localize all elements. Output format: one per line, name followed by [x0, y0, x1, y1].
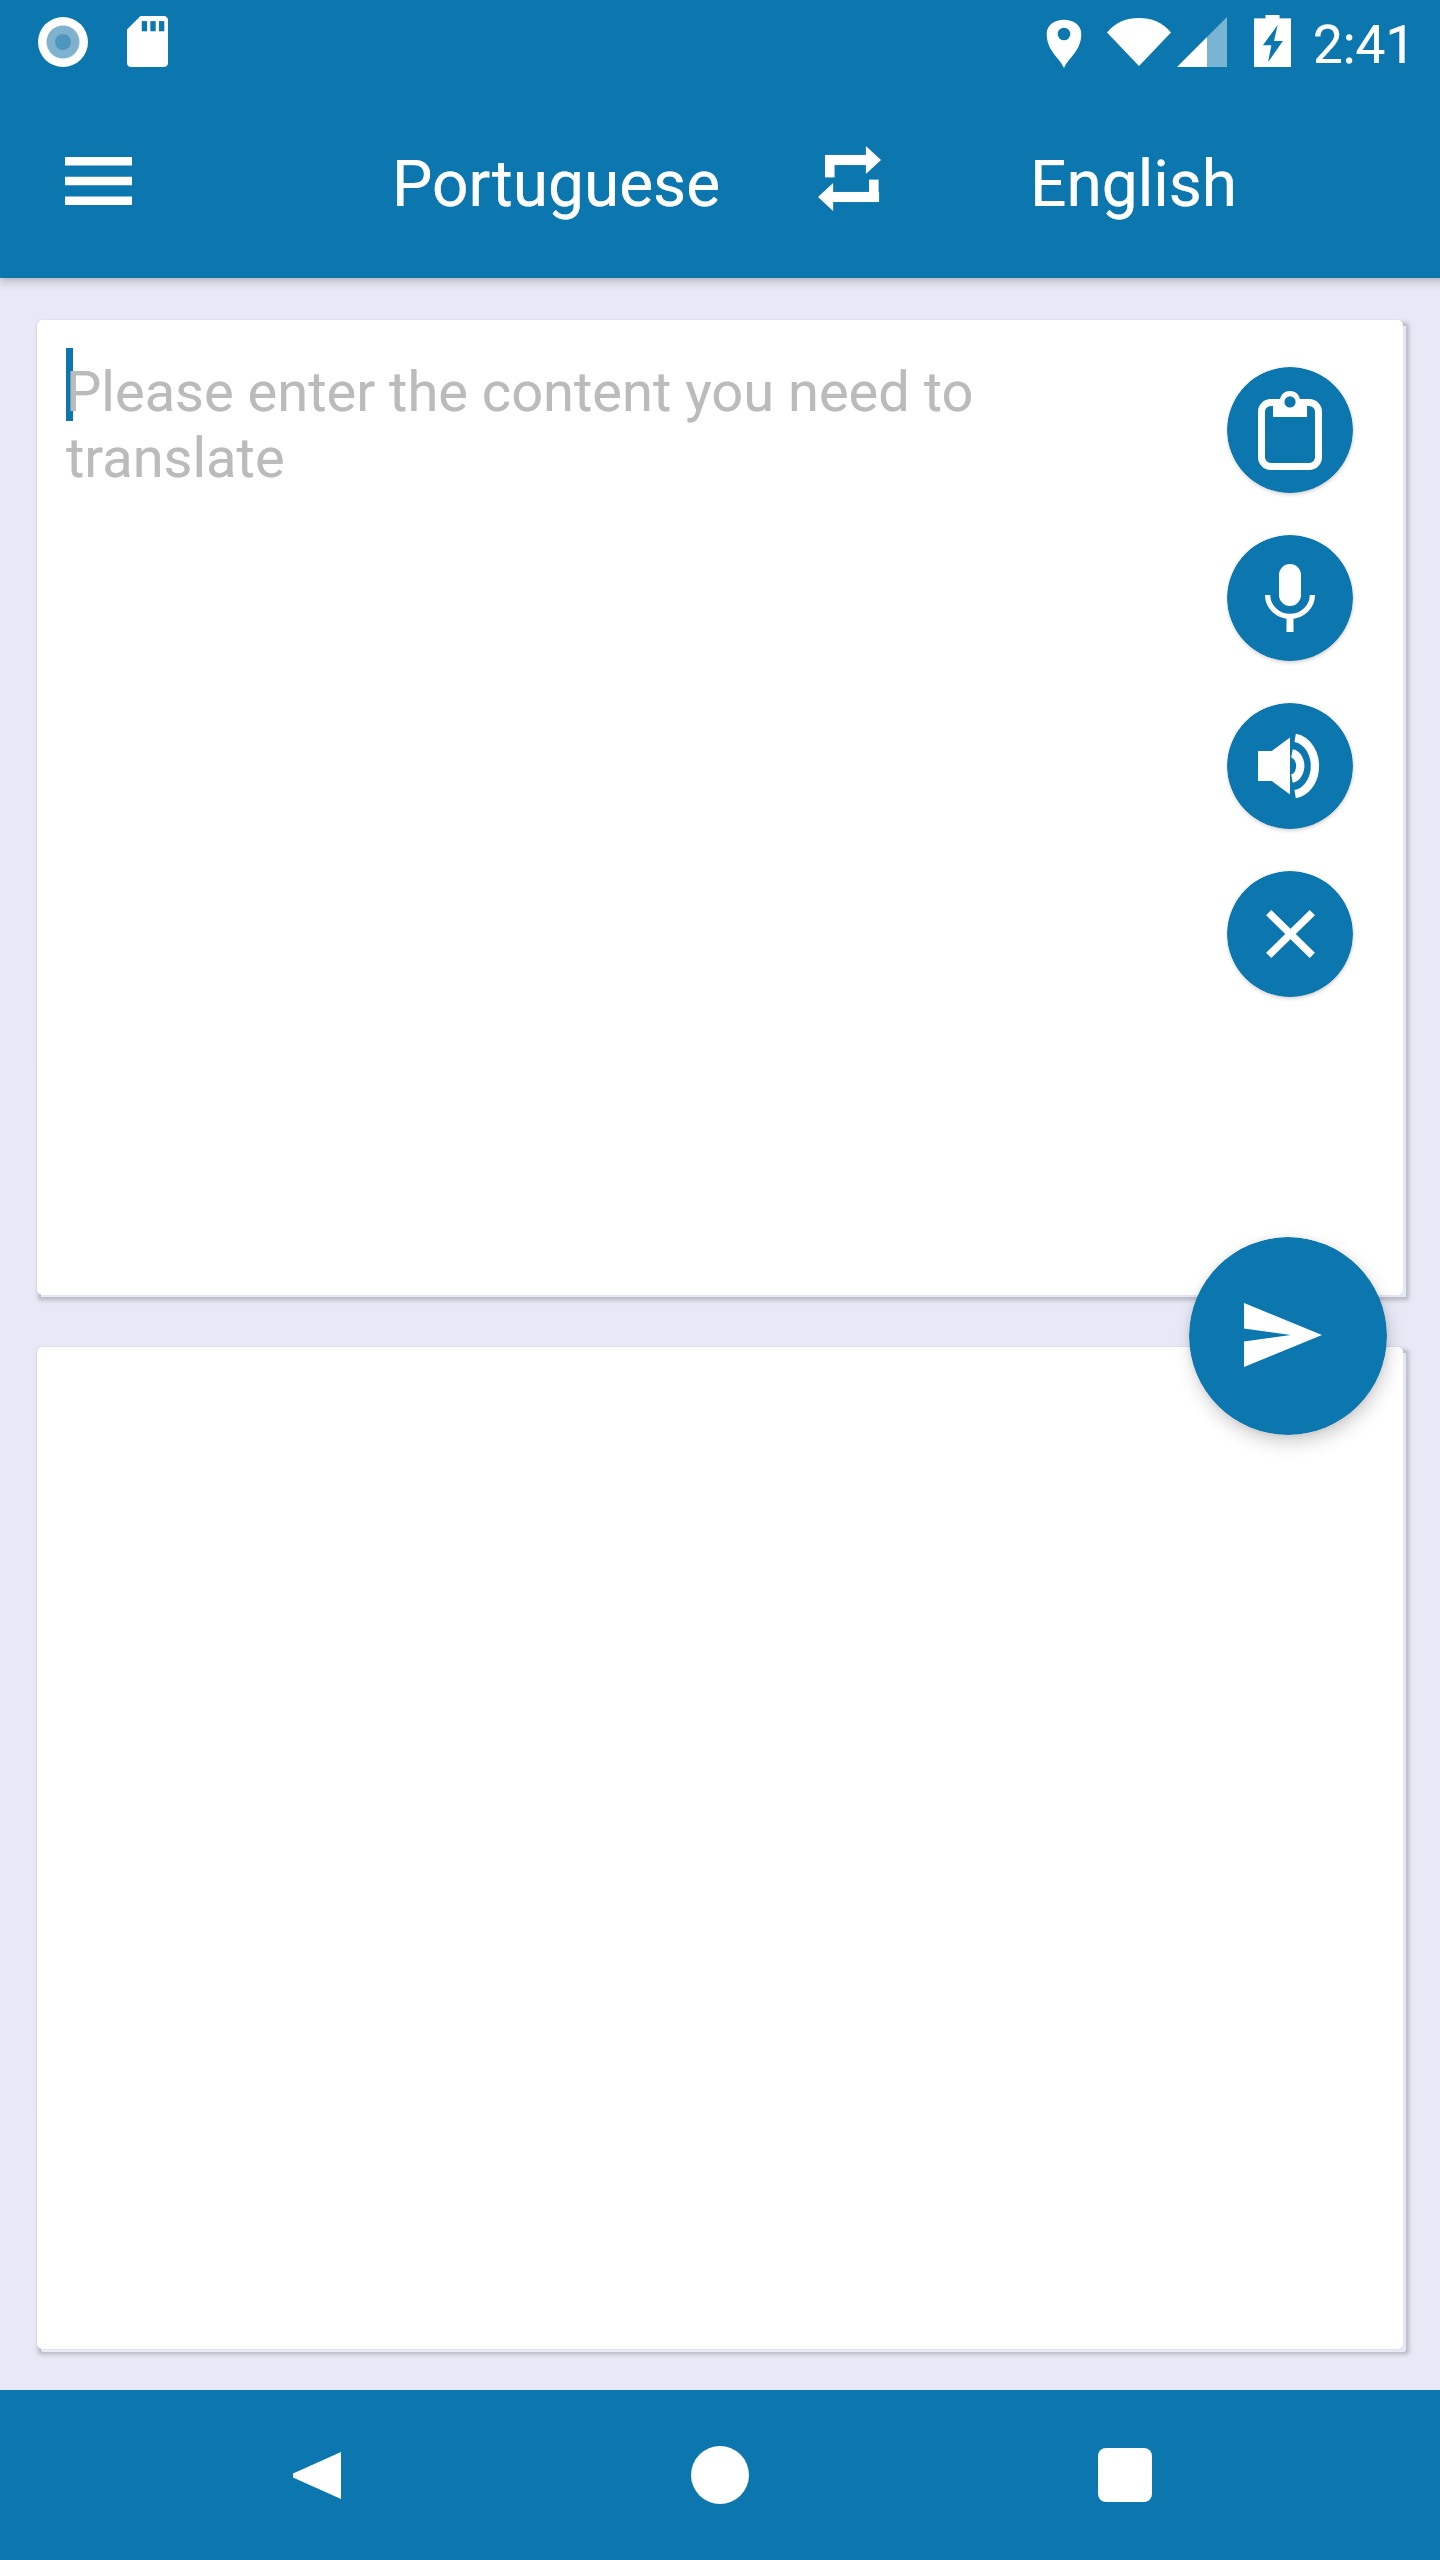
button[interactable]: Swap languages: [790, 89, 908, 267]
button[interactable]: Voice input: [1227, 535, 1353, 661]
staticText: Portuguese: [392, 147, 721, 222]
button[interactable]: Home: [630, 2390, 810, 2560]
button[interactable]: English: [1012, 95, 1256, 273]
button[interactable]: Back: [225, 2390, 405, 2560]
button[interactable]: [37, 1347, 1403, 2349]
button[interactable]: Translate: [1189, 1237, 1387, 1435]
button[interactable]: Speak: [1227, 703, 1353, 829]
button[interactable]: Menu: [32, 92, 164, 270]
button[interactable]: Portuguese: [374, 95, 739, 273]
button[interactable]: Clear: [1227, 871, 1353, 997]
button[interactable]: Recents: [1035, 2390, 1215, 2560]
button[interactable]: Paste: [1227, 367, 1353, 493]
button[interactable]: Please enter the content you need to tra…: [37, 320, 1197, 1295]
staticText: 2:41: [1313, 14, 1416, 76]
staticText: English: [1030, 147, 1238, 222]
staticText: Please enter the content you need to tra…: [66, 359, 1016, 491]
